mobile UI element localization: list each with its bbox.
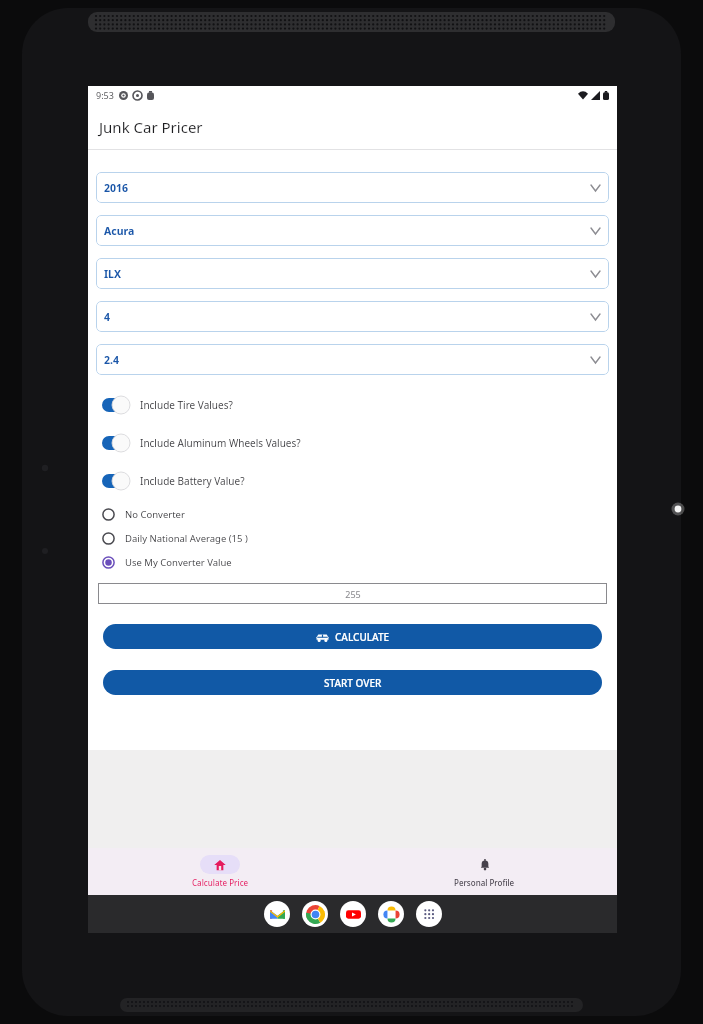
staticText: 2016 — [104, 181, 129, 195]
staticText: Use My Converter Value — [125, 556, 232, 569]
staticText: Include Battery Value? — [140, 474, 245, 488]
staticText: 255 — [345, 588, 361, 600]
staticText: Include Aluminum Wheels Values? — [140, 436, 301, 450]
staticText: CALCULATE — [335, 630, 390, 644]
staticText: Acura — [104, 224, 135, 238]
staticText: Junk Car Pricer — [99, 117, 203, 137]
button[interactable]: No Converter — [88, 502, 617, 526]
button[interactable]: Acura — [96, 215, 609, 246]
staticText: 9:53 — [96, 89, 114, 101]
button[interactable]: CALCULATE — [103, 624, 602, 649]
button[interactable]: Include Tire Values? — [88, 392, 617, 418]
button[interactable]: App — [378, 901, 404, 927]
button[interactable]: App — [416, 901, 442, 927]
staticText: 2.4 — [104, 353, 119, 367]
button[interactable]: Daily National Average (15 ) — [88, 526, 617, 550]
button[interactable]: Calculate Price — [88, 848, 352, 895]
staticText: Daily National Average (15 ) — [125, 532, 248, 545]
staticText: 4 — [104, 310, 111, 324]
staticText: Include Tire Values? — [140, 398, 233, 412]
button[interactable]: App — [340, 901, 366, 927]
button[interactable]: 255 — [98, 583, 607, 604]
button[interactable]: 2016 — [96, 172, 609, 203]
button[interactable]: Personal Profile — [352, 848, 617, 895]
button[interactable]: App — [264, 901, 290, 927]
staticText: Calculate Price — [192, 877, 249, 888]
button[interactable]: App — [302, 901, 328, 927]
button[interactable]: START OVER — [103, 670, 602, 695]
button[interactable]: ILX — [96, 258, 609, 289]
staticText: No Converter — [125, 508, 185, 521]
staticText: START OVER — [324, 676, 382, 690]
button[interactable]: 4 — [96, 301, 609, 332]
staticText: Personal Profile — [454, 877, 515, 888]
staticText: ILX — [104, 267, 121, 281]
button[interactable]: Include Battery Value? — [88, 468, 617, 494]
button[interactable]: Use My Converter Value — [88, 550, 617, 574]
button[interactable]: Include Aluminum Wheels Values? — [88, 430, 617, 456]
button[interactable]: 2.4 — [96, 344, 609, 375]
